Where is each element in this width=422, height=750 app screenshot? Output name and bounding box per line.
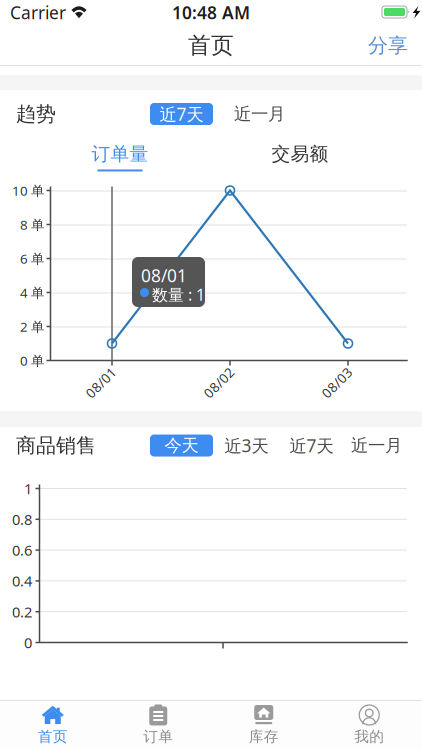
button[interactable]: 首页 (0, 700, 105, 750)
staticText: 0 单 (20, 352, 44, 369)
staticText: 10 单 (12, 182, 44, 199)
staticText: 近7天 (289, 434, 333, 457)
button[interactable]: 库存 (211, 700, 316, 750)
button[interactable]: 订单量 (70, 140, 170, 174)
staticText: 0.4 (12, 571, 32, 591)
button[interactable]: 分享 (354, 23, 422, 68)
staticText: 08/03 (318, 374, 355, 391)
button[interactable]: 我的 (316, 700, 422, 750)
staticText: 2 单 (20, 318, 44, 335)
staticText: 订单量 (91, 142, 148, 165)
staticText: 趋势 (16, 102, 56, 126)
staticText: 今天 (164, 435, 198, 456)
staticText: 首页 (38, 727, 68, 745)
button[interactable]: 近一月 (345, 434, 408, 456)
staticText: 数量 : 1 (152, 284, 205, 305)
staticText: Carrier (10, 1, 66, 24)
staticText: 0.6 (12, 540, 32, 560)
staticText: 1 (24, 479, 32, 498)
button[interactable]: 近一月 (228, 103, 291, 125)
button[interactable]: 今天 (150, 434, 213, 456)
button[interactable]: 订单 (105, 700, 211, 750)
staticText: 8 单 (20, 216, 44, 233)
staticText: 订单 (143, 727, 173, 745)
staticText: 6 单 (20, 250, 44, 267)
staticText: 08/02 (200, 374, 237, 391)
staticText: 0 (24, 633, 32, 652)
staticText: 交易额 (271, 142, 328, 165)
staticText: 近3天 (224, 434, 268, 457)
staticText: 近7天 (159, 102, 203, 125)
staticText: 近一月 (234, 103, 285, 125)
button[interactable]: 交易额 (250, 140, 350, 174)
button[interactable]: 近3天 (215, 434, 278, 456)
staticText: 08/01 (141, 264, 187, 287)
staticText: 首页 (188, 32, 234, 59)
button[interactable]: 近7天 (150, 103, 213, 125)
staticText: 库存 (249, 727, 279, 745)
staticText: 10:48 AM (172, 1, 250, 24)
staticText: 我的 (354, 727, 384, 745)
staticText: 0.8 (12, 510, 32, 529)
staticText: 4 单 (20, 284, 44, 301)
staticText: 08/01 (82, 374, 119, 391)
staticText: 分享 (368, 33, 408, 58)
button[interactable]: 近7天 (280, 434, 343, 456)
staticText: 0.2 (12, 602, 32, 621)
staticText: 商品销售 (16, 433, 96, 458)
staticText: 近一月 (351, 435, 402, 456)
